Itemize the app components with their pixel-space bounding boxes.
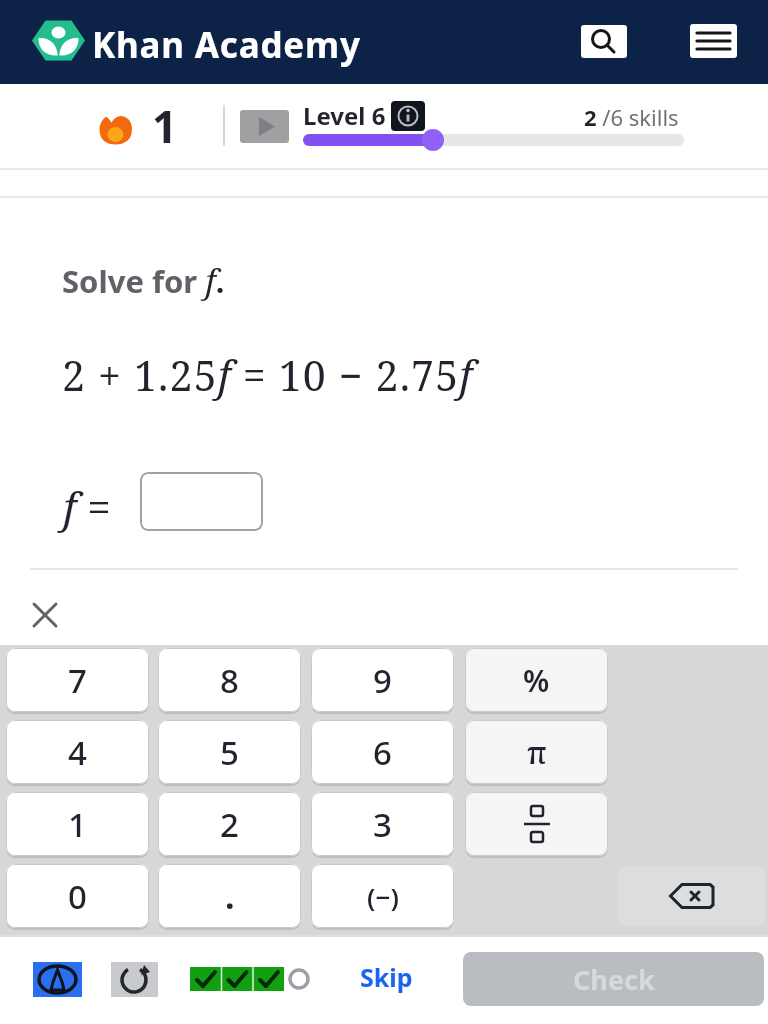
button[interactable]: 8 <box>158 648 301 712</box>
button[interactable]: 4 <box>6 720 149 784</box>
staticText: 0 <box>68 874 87 919</box>
staticText: Solve for f. <box>62 258 225 303</box>
button[interactable]: 0 <box>6 864 149 928</box>
button[interactable]: 5 <box>158 720 301 784</box>
staticText: 2 + 1.25f = 10 − 2.75f <box>62 347 473 403</box>
button[interactable] <box>465 792 608 856</box>
staticText: Check <box>573 961 655 998</box>
button[interactable] <box>391 101 425 131</box>
button[interactable] <box>33 603 57 627</box>
staticText: 1 <box>68 802 87 847</box>
staticText: Level 6 <box>303 99 386 132</box>
button[interactable]: % <box>465 648 608 712</box>
button[interactable]: Check <box>463 952 764 1006</box>
button[interactable] <box>33 962 82 997</box>
staticText: 8 <box>220 658 239 703</box>
button[interactable]: 7 <box>6 648 149 712</box>
button[interactable]: (−) <box>311 864 454 928</box>
button[interactable] <box>190 967 284 991</box>
button[interactable]: 2 <box>158 792 301 856</box>
button[interactable]: 1 <box>6 792 149 856</box>
button[interactable] <box>690 24 737 58</box>
button[interactable] <box>111 962 158 997</box>
staticText: f = <box>63 478 111 535</box>
staticText: 7 <box>68 658 87 703</box>
button[interactable]: . <box>158 864 301 928</box>
button[interactable] <box>240 110 289 143</box>
staticText: 1 <box>152 96 178 156</box>
staticText: Khan Academy <box>92 21 361 69</box>
staticText: 6 <box>373 730 392 775</box>
button[interactable]: Skip <box>355 960 408 994</box>
staticText: π <box>527 732 547 773</box>
staticText: (−) <box>367 879 399 914</box>
staticText: Skip <box>360 960 413 994</box>
button[interactable]: π <box>465 720 608 784</box>
button[interactable]: 6 <box>311 720 454 784</box>
staticText: 3 <box>373 802 392 847</box>
staticText: 2 /6 skills <box>584 102 679 132</box>
button[interactable] <box>581 25 627 58</box>
staticText: . <box>225 873 235 919</box>
button[interactable]: 3 <box>311 792 454 856</box>
staticText: % <box>523 660 550 701</box>
button[interactable]: 9 <box>311 648 454 712</box>
staticText: 9 <box>373 658 392 703</box>
staticText: 4 <box>68 730 87 775</box>
button[interactable] <box>618 865 765 927</box>
staticText: 5 <box>220 730 239 775</box>
button[interactable] <box>140 472 263 531</box>
staticText: 2 <box>220 802 239 847</box>
